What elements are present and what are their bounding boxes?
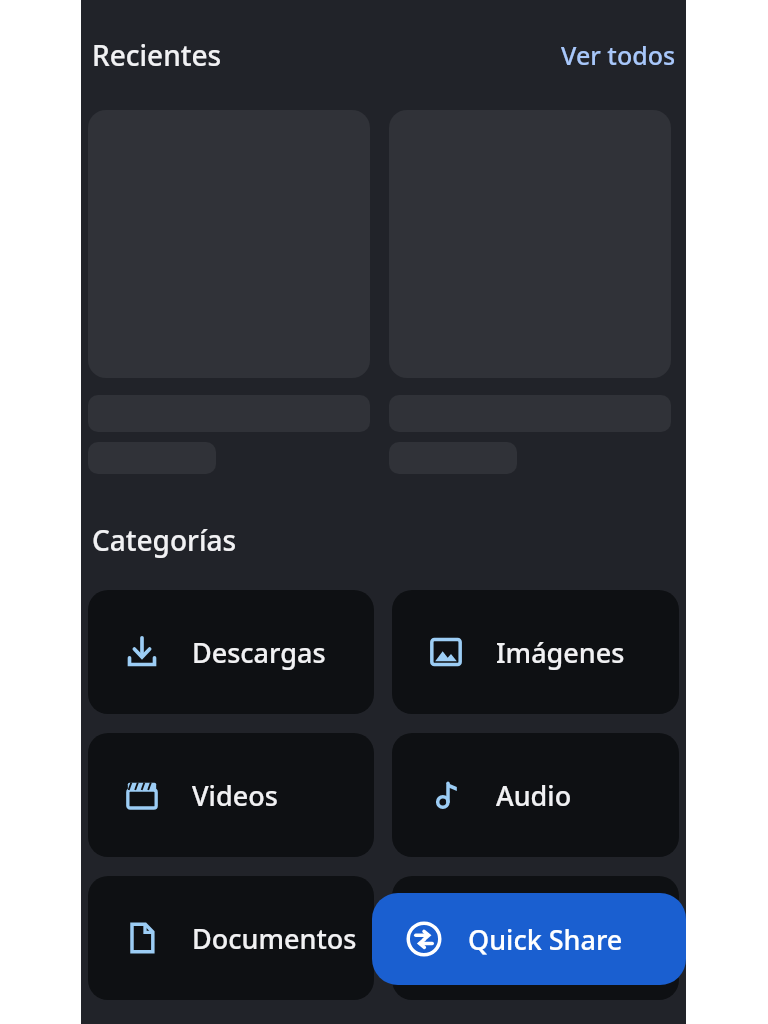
button[interactable]: Quick Share: [372, 893, 686, 985]
button[interactable]: Audio: [392, 733, 679, 857]
staticText: Quick Share: [468, 921, 623, 958]
button[interactable]: Ver todos: [559, 32, 678, 78]
staticText: Descargas: [192, 634, 326, 671]
button[interactable]: Imágenes: [392, 590, 679, 714]
staticText: Ver todos: [561, 38, 676, 72]
staticText: Imágenes: [496, 634, 625, 671]
button[interactable]: Apps: [392, 876, 679, 1000]
staticText: Apps: [496, 920, 561, 957]
button[interactable]: Documentos: [88, 876, 374, 1000]
staticText: Recientes: [92, 36, 222, 74]
staticText: Videos: [192, 777, 278, 814]
staticText: Audio: [496, 777, 572, 814]
button[interactable]: Descargas: [88, 590, 374, 714]
button[interactable]: Videos: [88, 733, 374, 857]
staticText: Documentos: [192, 920, 357, 957]
staticText: Categorías: [92, 521, 237, 559]
